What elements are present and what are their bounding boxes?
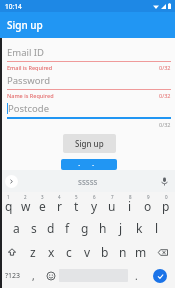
staticText: 0/32 bbox=[159, 121, 171, 128]
staticText: Sign up bbox=[7, 18, 43, 32]
staticText: m bbox=[135, 244, 147, 260]
staticText: 0 bbox=[165, 194, 168, 200]
button[interactable]: 1 bbox=[0, 192, 17, 216]
button[interactable]: m bbox=[132, 240, 150, 264]
button[interactable]: Backspace bbox=[150, 240, 175, 264]
staticText: ?123 bbox=[5, 271, 21, 281]
staticText: 2 bbox=[24, 194, 27, 200]
button[interactable]: x bbox=[42, 240, 60, 264]
staticText: 5 bbox=[75, 194, 78, 200]
button[interactable]: v bbox=[78, 240, 96, 264]
staticText: l bbox=[155, 220, 159, 236]
button[interactable]: , bbox=[25, 264, 42, 287]
staticText: i bbox=[128, 198, 132, 214]
button[interactable]: Voice input bbox=[160, 177, 169, 186]
staticText: q bbox=[5, 198, 13, 214]
staticText: Sign up bbox=[75, 138, 104, 149]
button[interactable]: z bbox=[24, 240, 42, 264]
button[interactable]: 8 bbox=[121, 192, 139, 216]
staticText: Login bbox=[78, 163, 100, 166]
staticText: 7 bbox=[111, 194, 114, 200]
staticText: 3 bbox=[41, 194, 44, 200]
button[interactable]: 0 bbox=[157, 192, 175, 216]
staticText: 6 bbox=[93, 194, 96, 200]
button[interactable]: 6 bbox=[85, 192, 103, 216]
staticText: o bbox=[144, 198, 152, 214]
staticText: Password bbox=[7, 74, 50, 87]
button[interactable]: Emoji bbox=[42, 264, 59, 287]
button[interactable]: f bbox=[59, 216, 76, 240]
staticText: z bbox=[30, 244, 36, 260]
staticText: h bbox=[99, 220, 107, 236]
button[interactable]: Sign up bbox=[63, 134, 116, 153]
button[interactable]: j bbox=[112, 216, 130, 240]
staticText: 4 bbox=[58, 194, 61, 200]
button[interactable]: Password bbox=[7, 72, 171, 89]
staticText: g bbox=[81, 220, 89, 236]
button[interactable]: k bbox=[130, 216, 148, 240]
staticText: x bbox=[48, 244, 55, 260]
staticText: c bbox=[66, 244, 72, 260]
staticText: b bbox=[101, 244, 109, 260]
staticText: 9 bbox=[147, 194, 150, 200]
staticText: 0/32 bbox=[159, 64, 171, 71]
staticText: 8 bbox=[129, 194, 132, 200]
staticText: v bbox=[84, 244, 91, 260]
button[interactable]: Email ID bbox=[7, 44, 171, 61]
staticText: f bbox=[65, 220, 70, 236]
button[interactable]: b bbox=[96, 240, 114, 264]
staticText: a bbox=[13, 220, 20, 236]
staticText: s bbox=[31, 220, 37, 236]
staticText: t bbox=[74, 198, 79, 214]
staticText: d bbox=[47, 220, 55, 236]
button[interactable]: Login bbox=[61, 159, 117, 170]
staticText: 1 bbox=[7, 194, 10, 200]
button[interactable]: 4 bbox=[51, 192, 68, 216]
button[interactable]: h bbox=[94, 216, 112, 240]
button[interactable]: Postcode bbox=[7, 100, 171, 117]
staticText: n bbox=[119, 244, 127, 260]
staticText: r bbox=[57, 198, 62, 214]
staticText: Email ID bbox=[7, 46, 45, 59]
button[interactable]: l bbox=[148, 216, 166, 240]
button[interactable]: Shift bbox=[0, 240, 24, 264]
button[interactable]: . bbox=[128, 264, 145, 287]
button[interactable]: 9 bbox=[139, 192, 157, 216]
button[interactable]: ?123 bbox=[0, 264, 25, 287]
staticText: 10:14 bbox=[5, 2, 22, 11]
button[interactable]: s bbox=[25, 216, 42, 240]
staticText: sssss bbox=[78, 176, 98, 187]
staticText: 0/32 bbox=[159, 92, 171, 99]
staticText: , bbox=[32, 269, 35, 283]
staticText: p bbox=[162, 198, 170, 214]
button[interactable]: c bbox=[60, 240, 78, 264]
staticText: Postcode bbox=[8, 102, 49, 115]
button[interactable]: Done bbox=[145, 264, 175, 287]
button[interactable]: 3 bbox=[34, 192, 51, 216]
button[interactable]: d bbox=[42, 216, 59, 240]
staticText: . bbox=[135, 269, 138, 283]
button[interactable]: n bbox=[114, 240, 132, 264]
staticText: w bbox=[21, 198, 31, 214]
button[interactable]: g bbox=[76, 216, 94, 240]
button[interactable]: a bbox=[8, 216, 25, 240]
staticText: u bbox=[108, 198, 116, 214]
staticText: j bbox=[119, 220, 123, 236]
staticText: Name is Required bbox=[7, 92, 54, 99]
staticText: Email is Required bbox=[7, 64, 53, 71]
button[interactable]: 5 bbox=[68, 192, 85, 216]
button[interactable]: 2 bbox=[17, 192, 34, 216]
staticText: y bbox=[91, 198, 98, 214]
staticText: e bbox=[39, 198, 46, 214]
button[interactable]: 7 bbox=[103, 192, 121, 216]
staticText: k bbox=[136, 220, 143, 236]
button[interactable]: Expand suggestions bbox=[5, 175, 18, 188]
